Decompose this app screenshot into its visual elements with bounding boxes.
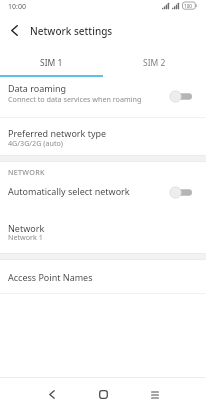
button[interactable]: SIM 1 — [0, 44, 103, 77]
staticText: SIM 2 — [143, 57, 166, 69]
button[interactable] — [0, 16, 28, 44]
staticText: Automatically select network — [8, 185, 130, 197]
staticText: 4G/3G/2G (auto) — [8, 138, 63, 148]
staticText: Network — [8, 222, 45, 234]
staticText: 100 — [184, 3, 192, 9]
staticText: Data roaming — [8, 82, 67, 94]
button[interactable]: Network — [0, 209, 206, 253]
button[interactable] — [141, 381, 168, 408]
staticText: Network settings — [30, 24, 113, 38]
staticText: Access Point Names — [8, 271, 93, 283]
button[interactable]: Preferred network type — [0, 118, 206, 155]
button[interactable]: Data roaming — [0, 77, 206, 117]
staticText: SIM 1 — [40, 57, 63, 69]
staticText: Preferred network type — [8, 127, 107, 139]
button[interactable]: Automatically select network — [0, 176, 206, 209]
staticText: Connect to data services when roaming — [8, 94, 142, 104]
button[interactable]: SIM 2 — [103, 44, 206, 77]
button[interactable] — [38, 381, 65, 408]
button[interactable]: Access Point Names — [0, 260, 206, 293]
button[interactable] — [90, 381, 117, 408]
staticText: NETWORK — [8, 167, 45, 177]
staticText: 10:00 — [8, 2, 26, 12]
staticText: Network 1 — [8, 232, 43, 242]
